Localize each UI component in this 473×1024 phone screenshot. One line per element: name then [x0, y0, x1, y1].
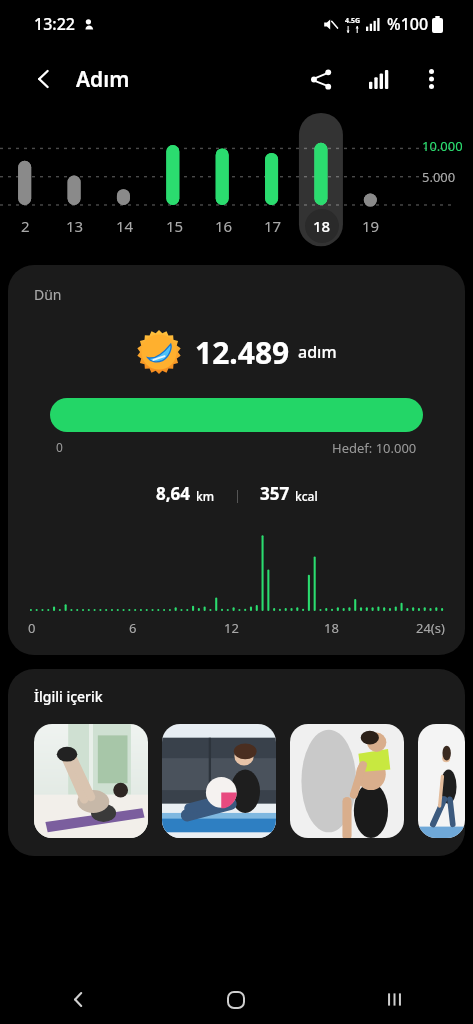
staticText: 19	[362, 216, 380, 236]
staticText: km	[196, 488, 215, 504]
button[interactable]: Back	[22, 57, 66, 101]
button[interactable]: More options	[409, 57, 453, 101]
staticText: 16	[215, 216, 233, 236]
staticText: 10.000	[422, 137, 463, 155]
staticText: adım	[298, 341, 337, 363]
button[interactable]: Share	[299, 57, 343, 101]
staticText: 12.489	[195, 332, 290, 373]
staticText: 357	[260, 482, 290, 505]
button[interactable]: Related content item	[162, 724, 276, 838]
staticText: 12	[224, 619, 239, 637]
button[interactable]: 14	[108, 209, 142, 243]
button[interactable]: 16	[207, 209, 241, 243]
button[interactable]: 19	[354, 209, 388, 243]
staticText: Dün	[34, 285, 62, 304]
button[interactable]: Home	[157, 975, 315, 1024]
staticText: 0	[56, 439, 63, 455]
staticText: 2	[21, 216, 30, 236]
button[interactable]: Statistics	[357, 57, 401, 101]
button[interactable]: 13	[58, 209, 92, 243]
button[interactable]: 18	[305, 209, 339, 243]
staticText: 5.000	[422, 168, 456, 186]
staticText: 13:22	[34, 13, 75, 35]
staticText: 14	[116, 216, 134, 236]
button[interactable]: Related content item	[34, 724, 148, 838]
staticText: 13	[66, 216, 84, 236]
button[interactable]: Dün	[8, 265, 465, 655]
staticText: 18	[324, 619, 339, 637]
staticText: 4.5G	[345, 16, 361, 26]
button[interactable]: Related content item	[418, 724, 465, 838]
staticText: 8,64	[156, 482, 191, 505]
staticText: İlgili içerik	[34, 687, 103, 706]
button[interactable]: Related content item	[290, 724, 404, 838]
staticText: 24(s)	[416, 619, 445, 637]
staticText: 17	[264, 216, 282, 236]
staticText: %100	[387, 13, 429, 35]
staticText: Adım	[76, 65, 130, 94]
button[interactable]: 17	[256, 209, 290, 243]
staticText: 15	[166, 216, 184, 236]
button[interactable]: 2	[8, 209, 42, 243]
staticText: 6	[129, 619, 137, 637]
staticText: Hedef: 10.000	[332, 439, 417, 457]
staticText: 0	[28, 619, 36, 637]
button[interactable]: Recent apps	[315, 975, 473, 1024]
button[interactable]: 15	[158, 209, 192, 243]
staticText: kcal	[295, 488, 318, 504]
staticText: 18	[313, 216, 331, 236]
button[interactable]: Back	[0, 975, 157, 1024]
